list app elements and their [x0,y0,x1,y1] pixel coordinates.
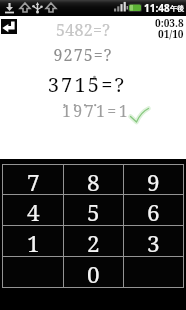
staticText: 6 [147,197,160,227]
button[interactable]: 6 [124,195,183,225]
button[interactable]: 5 [64,195,123,225]
staticText: 11:48 [144,1,170,15]
staticText: 01/10 [158,27,184,41]
button[interactable]: 0 [64,257,123,287]
staticText: 1971=1 [3,100,186,122]
button[interactable]: 9 [124,165,183,194]
staticText: 午後 [170,4,184,13]
staticText: 5482=? [0,19,176,41]
button[interactable]: 1 [3,226,63,256]
staticText: 9275=? [0,44,176,66]
staticText: 3715=? [0,71,180,98]
staticText: 3 [147,228,160,258]
staticText: 2 [87,228,100,258]
button[interactable]: 3 [124,226,183,256]
button[interactable]: 7 [3,165,63,194]
button[interactable] [1,19,17,34]
staticText: 7 [27,167,40,196]
button[interactable]: 4 [3,195,63,225]
staticText: 1 [27,228,40,258]
staticText: 5 [87,197,100,227]
staticText: 4 [27,197,40,227]
staticText: 0:03.8 [155,16,184,30]
staticText: 0 [87,259,100,289]
button[interactable]: 8 [64,165,123,194]
button[interactable]: 2 [64,226,123,256]
staticText: 9 [147,167,160,196]
staticText: 8 [87,167,100,196]
